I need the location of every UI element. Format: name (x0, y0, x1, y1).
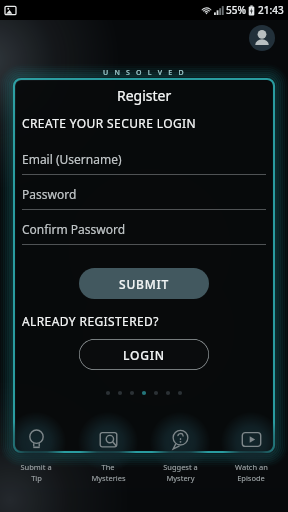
staticText: CREATE YOUR SECURE LOGIN (22, 115, 197, 131)
button[interactable]: Suggest a (146, 418, 214, 490)
staticText: ALREADY REGISTERED? (22, 313, 159, 329)
staticText: Watch an (235, 462, 268, 472)
button[interactable]: Submit a (2, 418, 70, 490)
staticText: SUBMIT (119, 276, 170, 292)
staticText: 21:43 (258, 3, 284, 17)
button[interactable]: The (74, 418, 142, 490)
staticText: Mysteries (91, 473, 126, 483)
staticText: Episode (237, 473, 265, 483)
staticText: The (101, 462, 115, 472)
staticText: Tip (31, 473, 42, 483)
staticText: Email (Username) (22, 151, 122, 167)
staticText: Submit a (20, 462, 52, 472)
button[interactable]: LOGIN (79, 339, 209, 370)
button[interactable]: Account (249, 25, 275, 51)
button[interactable]: SUBMIT (79, 268, 209, 299)
staticText: LOGIN (123, 347, 165, 363)
staticText: U N S O L V E D (103, 68, 186, 78)
staticText: Password (22, 186, 77, 202)
staticText: Confirm Password (22, 221, 126, 237)
button[interactable]: Watch an (217, 418, 285, 490)
staticText: Mystery (166, 473, 195, 483)
staticText: Suggest a (163, 462, 198, 472)
staticText: Register (117, 86, 172, 105)
staticText: 55% (226, 3, 246, 17)
